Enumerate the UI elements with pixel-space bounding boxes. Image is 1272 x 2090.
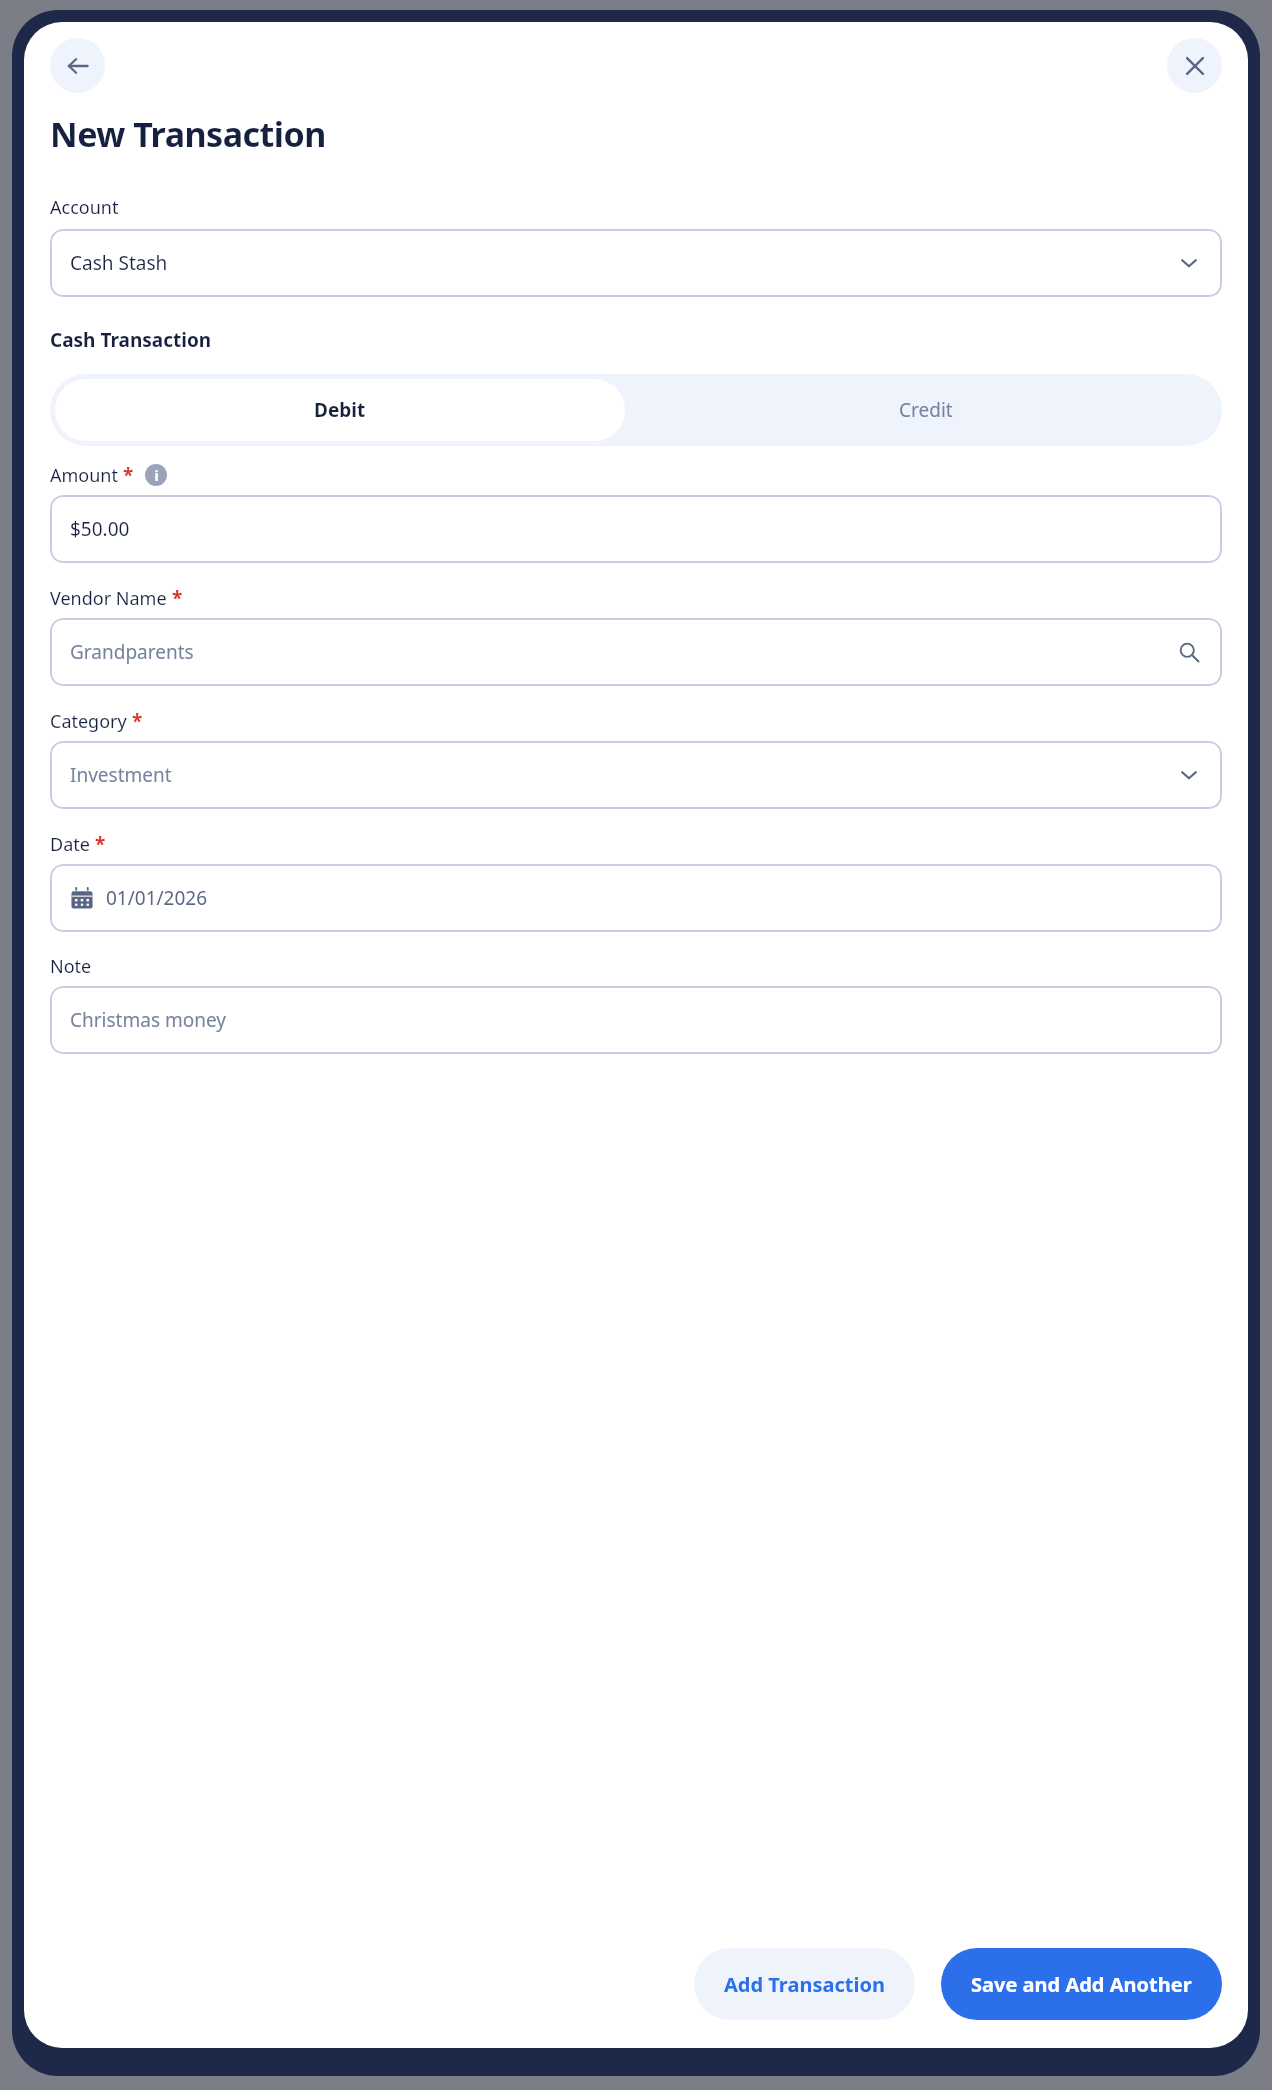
staticText: $50.00 [70, 516, 1202, 542]
button[interactable]: Cash Stash [50, 229, 1222, 297]
button[interactable]: Open dropdown [1176, 250, 1202, 276]
staticText: Investment [70, 762, 1176, 788]
staticText: Account [50, 195, 119, 220]
staticText: Debit [314, 397, 366, 423]
staticText: Credit [899, 397, 953, 423]
staticText: Vendor Name [50, 586, 167, 611]
staticText: Cash Transaction [50, 327, 212, 353]
button[interactable]: Search vendor [1176, 639, 1202, 665]
staticText: Cash Stash [70, 250, 1176, 276]
button[interactable]: Credit [630, 374, 1222, 446]
button[interactable]: $50.00 [50, 495, 1222, 563]
button[interactable]: 01/01/2026 [50, 864, 1222, 932]
staticText: * [172, 585, 183, 611]
staticText: Christmas money [70, 1007, 1202, 1033]
staticText: * [123, 462, 134, 488]
button[interactable]: Grandparents [50, 618, 1222, 686]
staticText: New Transaction [50, 111, 326, 157]
staticText: Grandparents [70, 639, 1176, 665]
button[interactable]: Amount info [145, 464, 167, 486]
staticText: * [132, 708, 143, 734]
button[interactable]: Debit [55, 379, 625, 441]
staticText: i [154, 466, 159, 485]
staticText: Amount [50, 463, 118, 488]
staticText: Save and Add Another [971, 1971, 1192, 1998]
button[interactable]: Save and Add Another [941, 1948, 1222, 2020]
button[interactable]: Close [1167, 38, 1222, 93]
button[interactable]: Back [50, 38, 105, 93]
staticText: Add Transaction [724, 1971, 885, 1998]
staticText: 01/01/2026 [106, 885, 1202, 911]
button[interactable]: Christmas money [50, 986, 1222, 1054]
staticText: Category [50, 709, 127, 734]
button[interactable]: Add Transaction [694, 1948, 915, 2020]
staticText: * [95, 831, 106, 857]
button[interactable]: Investment [50, 741, 1222, 809]
staticText: Note [50, 954, 92, 979]
staticText: Date [50, 832, 90, 857]
button[interactable]: Open dropdown [1176, 762, 1202, 788]
